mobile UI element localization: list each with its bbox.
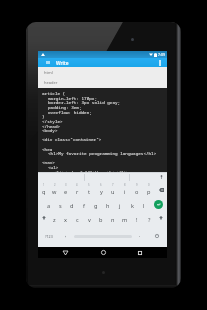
staticText: html	[44, 70, 53, 75]
staticText: 7	[112, 183, 114, 187]
staticText: b	[99, 216, 103, 224]
button[interactable]: a	[43, 197, 54, 211]
button[interactable]: c	[71, 211, 83, 225]
staticText: 2	[54, 183, 56, 187]
staticText: 1	[43, 183, 45, 187]
staticText: o	[135, 188, 139, 196]
staticText: 4	[76, 183, 78, 187]
button[interactable]: Comma	[59, 225, 72, 247]
button[interactable]: !	[131, 211, 143, 225]
staticText: <nav>	[42, 159, 55, 165]
staticText: x	[64, 216, 67, 224]
button[interactable]: Space	[72, 225, 133, 247]
staticText: k	[131, 202, 134, 210]
button[interactable]: h	[102, 197, 114, 211]
button[interactable]: More options	[155, 58, 165, 67]
button[interactable]: 0	[143, 182, 155, 197]
staticText: 6	[100, 183, 102, 187]
button[interactable]: Emoji	[146, 225, 167, 247]
staticText: l	[143, 202, 145, 210]
button[interactable]: Enter	[154, 200, 163, 209]
button[interactable]: k	[126, 197, 138, 211]
staticText: .	[139, 232, 141, 239]
button[interactable]: ?	[143, 211, 155, 225]
button[interactable]: v	[83, 211, 95, 225]
staticText: i	[124, 188, 126, 196]
staticText: t	[88, 188, 91, 196]
staticText: 9	[136, 183, 138, 187]
staticText: y	[100, 188, 103, 196]
staticText: ?	[148, 216, 151, 224]
staticText: !	[136, 216, 138, 224]
staticText: <h1>My favorite programming languages</h…	[48, 150, 157, 156]
button[interactable]: b	[95, 211, 107, 225]
button[interactable]: Back	[55, 247, 75, 258]
staticText: p	[147, 188, 151, 196]
staticText: m	[122, 216, 128, 224]
button[interactable]: Backspace	[155, 182, 167, 197]
staticText: <hea	[42, 146, 53, 152]
staticText: u	[111, 188, 115, 196]
staticText: }	[42, 113, 45, 119]
button[interactable]: 4	[71, 182, 83, 197]
button[interactable]: s	[54, 197, 66, 211]
staticText: j	[119, 202, 121, 210]
staticText: n	[111, 216, 115, 224]
button[interactable]: Shift right	[155, 211, 167, 225]
button[interactable]: 5	[83, 182, 95, 197]
staticText: f	[83, 202, 85, 210]
button[interactable]: l	[138, 197, 150, 211]
button[interactable]: d	[66, 197, 78, 211]
button[interactable]: f	[78, 197, 90, 211]
button[interactable]: g	[90, 197, 102, 211]
button[interactable]: 9	[131, 182, 143, 197]
staticText: h	[106, 202, 110, 210]
button[interactable]: Home	[93, 247, 113, 258]
button[interactable]: n	[107, 211, 119, 225]
button[interactable]: j	[114, 197, 126, 211]
staticText: <ul>	[48, 164, 59, 170]
staticText: </style>	[42, 118, 63, 124]
staticText: q	[42, 188, 46, 196]
button[interactable]: 1	[38, 182, 49, 197]
button[interactable]: html	[38, 67, 167, 77]
staticText: </head>	[42, 123, 61, 129]
staticText: <li><a href="#">Home</a></li>	[54, 169, 129, 172]
staticText: overflow: hidden;	[48, 109, 92, 115]
staticText: g	[94, 202, 98, 210]
button[interactable]: Navigation menu	[43, 58, 52, 67]
staticText: s	[59, 202, 62, 210]
staticText: 0	[148, 183, 150, 187]
staticText: 7:09	[158, 52, 165, 57]
button[interactable]: 2	[49, 182, 60, 197]
button[interactable]: x	[60, 211, 71, 225]
staticText: z	[53, 216, 56, 224]
button[interactable]: header	[38, 77, 167, 88]
button[interactable]: 8	[119, 182, 131, 197]
staticText: 8	[124, 183, 126, 187]
staticText: border-left: 3px solid gray;	[48, 99, 121, 105]
staticText: e	[64, 188, 68, 196]
button[interactable]: 3	[60, 182, 71, 197]
staticText: ,	[65, 232, 67, 239]
staticText: margin-left: 170px;	[48, 95, 97, 101]
staticText: d	[70, 202, 74, 210]
button[interactable]: Shift	[38, 211, 49, 225]
staticText: c	[76, 216, 79, 224]
button[interactable]: m	[119, 211, 131, 225]
button[interactable]: Voice input	[158, 174, 164, 180]
button[interactable]: ?123	[38, 225, 59, 247]
button[interactable]: 7	[107, 182, 119, 197]
button[interactable]: 6	[95, 182, 107, 197]
button[interactable]: z	[49, 211, 60, 225]
staticText: Write	[56, 60, 69, 67]
button[interactable]: Recent apps	[130, 247, 150, 258]
staticText: 3	[65, 183, 67, 187]
staticText: <div class="container">	[42, 136, 102, 142]
staticText: a	[47, 202, 51, 210]
staticText: r	[76, 188, 79, 196]
staticText: padding: 3em;	[48, 104, 82, 110]
staticText: header	[44, 80, 58, 85]
staticText: v	[88, 216, 91, 224]
